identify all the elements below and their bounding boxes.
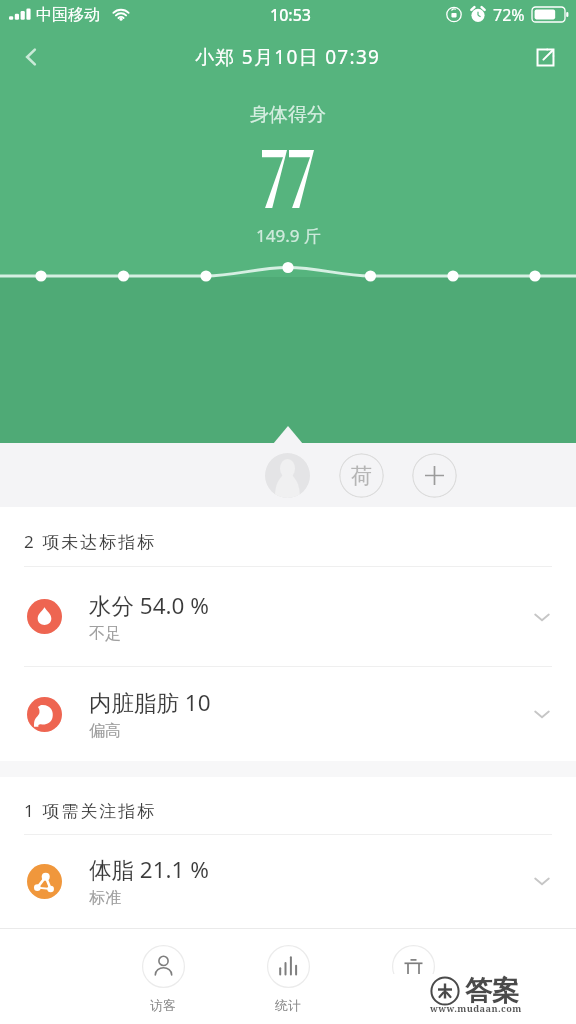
staticText: 1 项需关注指标 bbox=[24, 799, 157, 822]
staticText: 身体得分 bbox=[250, 103, 326, 127]
staticText: 小郑 5月10日 07:39 bbox=[195, 44, 381, 70]
button[interactable]: User 小郑 bbox=[265, 453, 310, 498]
staticText: 2 项未达标指标 bbox=[24, 530, 157, 553]
button[interactable]: Add member bbox=[412, 453, 457, 498]
button[interactable]: 体脂 21.1 % bbox=[0, 835, 576, 927]
staticText: 答案 bbox=[465, 974, 519, 1008]
staticText: 72% bbox=[493, 4, 525, 26]
staticText: 荷 bbox=[351, 463, 372, 489]
staticText: www.mudaan.com bbox=[430, 1002, 522, 1015]
staticText: 水分 54.0 % bbox=[89, 590, 210, 621]
button[interactable]: Share bbox=[514, 37, 576, 77]
staticText: 统计 bbox=[275, 997, 301, 1013]
staticText: 10:53 bbox=[270, 4, 311, 26]
staticText: 体脂 21.1 % bbox=[89, 854, 210, 885]
button[interactable]: 统计 bbox=[255, 929, 321, 1013]
staticText: 访客 bbox=[150, 997, 176, 1013]
button[interactable]: 荷 bbox=[339, 453, 384, 498]
staticText: 149.9 斤 bbox=[256, 224, 321, 247]
staticText: 标准 bbox=[89, 888, 121, 908]
button[interactable]: 访客 bbox=[130, 929, 196, 1013]
staticText: 内脏脂肪 10 bbox=[89, 687, 211, 718]
button[interactable]: 内脏脂肪 10 bbox=[0, 667, 576, 761]
button[interactable]: 商城 bbox=[380, 929, 446, 1013]
staticText: 不足 bbox=[89, 624, 121, 644]
staticText: 偏高 bbox=[89, 721, 121, 741]
button[interactable]: Back bbox=[0, 37, 62, 77]
button[interactable]: 水分 54.0 % bbox=[0, 567, 576, 666]
staticText: 中国移动 bbox=[36, 5, 100, 25]
